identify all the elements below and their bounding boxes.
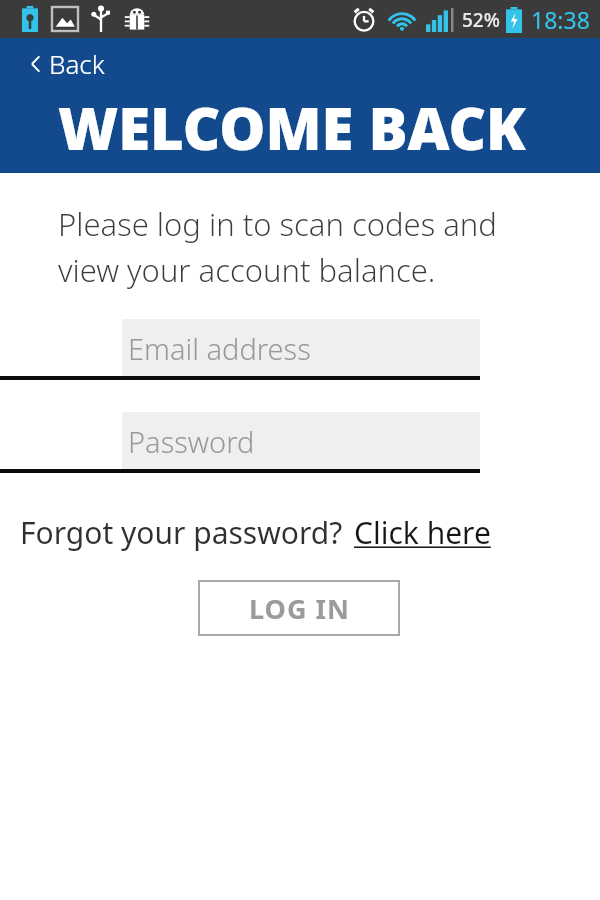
staticText: Forgot your password? <box>20 512 343 553</box>
staticText: Please log in to scan codes and view you… <box>58 203 534 291</box>
button[interactable]: Click here <box>354 512 491 553</box>
button[interactable]: Back <box>24 42 111 85</box>
staticText: Back <box>49 46 105 81</box>
staticText: 52% <box>462 7 500 33</box>
staticText: WELCOME BACK <box>58 88 526 167</box>
staticText: Email address <box>128 329 311 368</box>
staticText: LOG IN <box>249 590 350 627</box>
staticText: Password <box>128 422 255 461</box>
button[interactable]: Password <box>0 412 600 476</box>
button[interactable]: LOG IN <box>198 580 400 636</box>
button[interactable]: Email address <box>0 319 600 383</box>
staticText: 18:38 <box>531 4 590 35</box>
